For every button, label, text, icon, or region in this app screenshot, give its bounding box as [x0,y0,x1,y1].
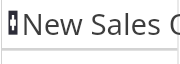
button[interactable]: New Sales Order [2,0,178,18]
